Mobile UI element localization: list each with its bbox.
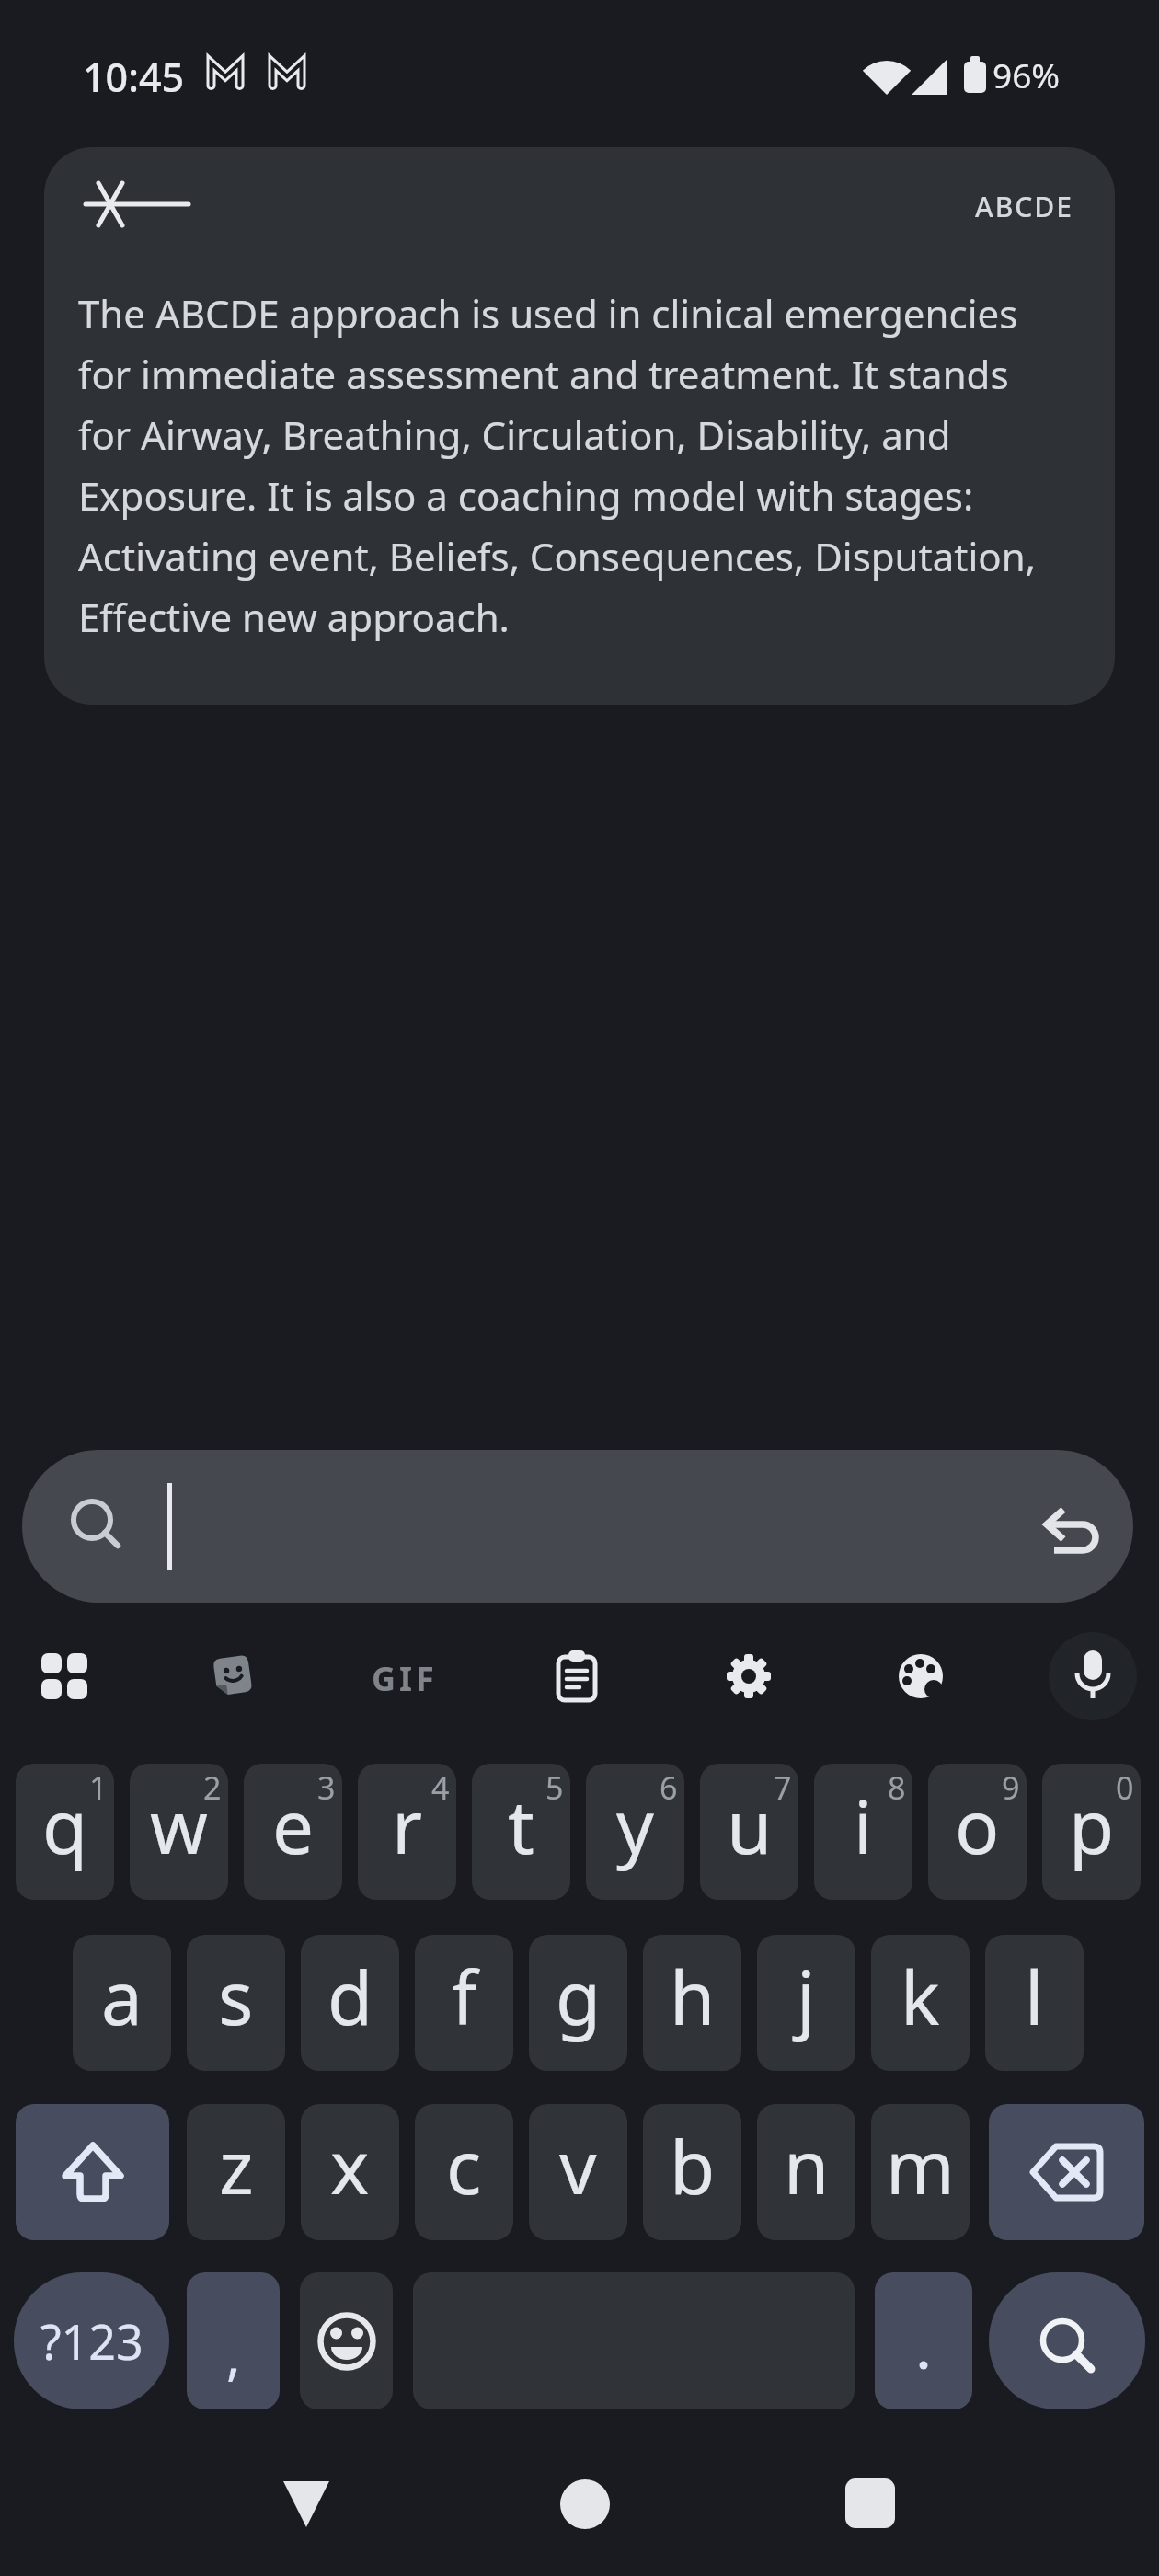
staticText: z [219,2115,254,2215]
staticText: GIF [372,1656,438,1696]
staticText: x [330,2115,370,2215]
button[interactable] [898,1653,944,1699]
button[interactable]: k [871,1935,970,2071]
staticText: 4 [431,1766,450,1809]
button[interactable]: v [529,2104,627,2240]
staticText: 8 [888,1766,906,1809]
button[interactable] [16,2104,169,2240]
staticText: t [508,1775,534,1875]
button[interactable]: d [301,1935,399,2071]
staticText: , [226,2317,241,2390]
button[interactable] [726,1653,772,1699]
button[interactable] [41,1653,87,1699]
staticText: b [670,2115,716,2215]
button[interactable]: o [928,1764,1027,1900]
staticText: 7 [774,1766,792,1809]
button[interactable] [300,2272,393,2409]
staticText: 9 [1002,1766,1020,1809]
button[interactable]: q [16,1764,114,1900]
button[interactable] [561,2480,609,2528]
staticText: The ABCDE approach is used in clinical e… [78,287,1036,643]
staticText: 10:45 [83,50,185,104]
button[interactable]: ?123 [14,2272,169,2409]
button[interactable]: c [415,2104,513,2240]
staticText: u [727,1775,773,1875]
staticText: f [452,1946,477,2046]
button[interactable]: h [643,1935,741,2071]
staticText: l [1025,1946,1044,2046]
staticText: 2 [203,1766,222,1809]
button[interactable]: t [472,1764,570,1900]
button[interactable] [282,2480,330,2528]
button[interactable]: j [757,1935,855,2071]
button[interactable]: l [985,1935,1084,2071]
staticText: 0 [1116,1766,1134,1809]
button[interactable]: z [187,2104,285,2240]
staticText: g [556,1946,602,2046]
button[interactable]: r [358,1764,456,1900]
staticText: ?123 [40,2308,143,2374]
staticText: v [559,2115,597,2215]
button[interactable]: a [73,1935,171,2071]
button[interactable] [989,2272,1145,2409]
button[interactable]: p [1042,1764,1141,1900]
button[interactable] [845,2478,895,2528]
staticText: s [218,1946,254,2046]
button[interactable]: x [301,2104,399,2240]
staticText: r [392,1775,423,1875]
staticText: 3 [317,1766,336,1809]
button[interactable] [22,1450,1133,1603]
button[interactable]: , [187,2272,280,2409]
button[interactable]: u [700,1764,798,1900]
button[interactable]: m [871,2104,970,2240]
staticText: q [42,1775,88,1875]
staticText: k [901,1946,940,2046]
button[interactable] [875,2272,972,2409]
button[interactable] [557,1650,597,1702]
button[interactable]: n [757,2104,855,2240]
button[interactable]: b [643,2104,741,2240]
staticText: n [784,2115,830,2215]
staticText: j [797,1946,816,2046]
button[interactable]: f [415,1935,513,2071]
staticText: w [150,1775,208,1875]
button[interactable]: i [814,1764,912,1900]
button[interactable] [210,1653,256,1699]
staticText: 1 [89,1766,108,1809]
staticText: a [101,1946,143,2046]
button[interactable]: g [529,1935,627,2071]
staticText: ABCDE [975,188,1073,225]
staticText: 6 [660,1766,678,1809]
staticText: i [854,1775,873,1875]
staticText: p [1069,1775,1115,1875]
button[interactable]: y [586,1764,684,1900]
staticText: 96% [993,52,1061,98]
button[interactable] [989,2104,1144,2240]
staticText: m [886,2115,955,2215]
staticText: e [272,1775,315,1875]
button[interactable]: e [244,1764,342,1900]
staticText: h [670,1946,716,2046]
staticText: o [955,1775,1000,1875]
staticText: d [327,1946,373,2046]
staticText: c [446,2115,482,2215]
staticText: y [616,1775,654,1875]
button[interactable]: ABCDE [44,147,1115,705]
button[interactable]: w [130,1764,228,1900]
button[interactable]: GIF [354,1656,455,1696]
staticText: 5 [545,1766,564,1809]
button[interactable]: s [187,1935,285,2071]
button[interactable] [1049,1632,1137,1720]
